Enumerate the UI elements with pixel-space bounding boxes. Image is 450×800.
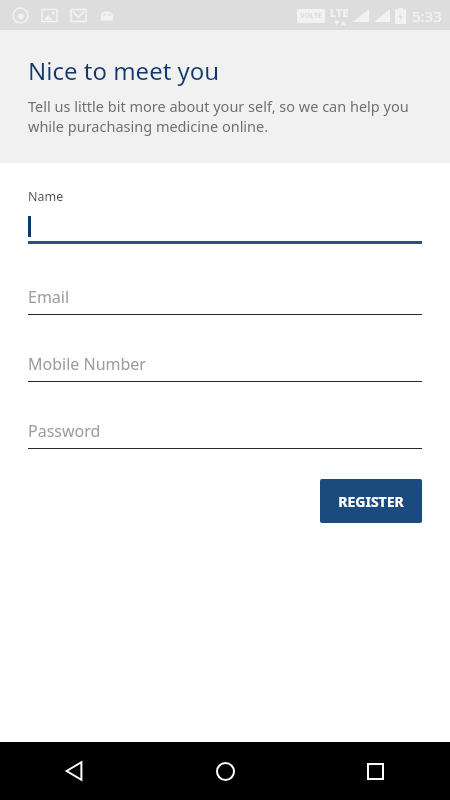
staticText: Nice to meet you	[28, 54, 220, 87]
staticText: 5:33	[412, 6, 442, 26]
button[interactable]: Mobile Number	[28, 353, 422, 382]
staticText: Password	[28, 420, 101, 442]
staticText: LTE	[330, 5, 349, 20]
button[interactable]: Recent apps	[300, 742, 450, 800]
staticText: VOLTE	[300, 11, 322, 21]
button[interactable]: Back	[0, 742, 150, 800]
staticText: REGISTER	[338, 492, 404, 511]
button[interactable]: Name	[28, 188, 422, 244]
button[interactable]: REGISTER	[320, 479, 422, 523]
staticText: Tell us little bit more about your self,…	[28, 96, 428, 137]
staticText: Email	[28, 286, 70, 308]
staticText: Mobile Number	[28, 353, 146, 375]
staticText: Name	[28, 188, 64, 205]
button[interactable]: Password	[28, 420, 422, 449]
button[interactable]: Email	[28, 286, 422, 315]
button[interactable]: Home	[150, 742, 300, 800]
